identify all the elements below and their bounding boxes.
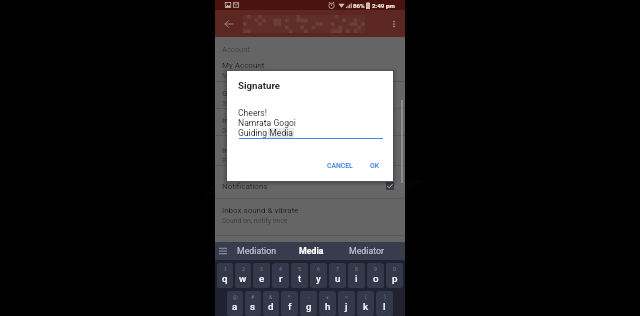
staticText: 8	[355, 266, 358, 272]
staticText: Inbox notifications	[222, 146, 288, 155]
staticText: y	[316, 273, 321, 284]
staticText: &	[269, 294, 273, 300]
button[interactable]: =	[338, 291, 355, 316]
staticText: )	[384, 294, 386, 300]
staticText: 2:49 pm	[372, 2, 395, 9]
button[interactable]: 2	[235, 263, 251, 288]
staticText: r	[279, 273, 283, 284]
button[interactable]: 9	[367, 263, 384, 288]
staticText: 6	[317, 266, 320, 272]
staticText: 1	[224, 266, 227, 272]
button[interactable]: )	[376, 291, 393, 316]
button[interactable]: Media	[282, 242, 340, 260]
button[interactable]: My Account	[215, 61, 405, 80]
staticText: @	[233, 294, 238, 300]
staticText: i	[355, 273, 358, 284]
button[interactable]: Mediator	[341, 242, 393, 260]
staticText: General settings	[222, 89, 280, 98]
button[interactable]: Navigate up	[219, 10, 239, 37]
staticText: Mediator	[349, 246, 385, 256]
staticText: +	[326, 294, 329, 300]
staticText: p	[392, 273, 398, 284]
staticText: CANCEL	[327, 162, 353, 170]
button[interactable]: 7	[329, 263, 346, 288]
staticText: Notifications	[222, 182, 268, 191]
button[interactable]: (	[357, 291, 374, 316]
button[interactable]: CANCEL	[323, 159, 357, 173]
staticText: 4	[279, 266, 282, 272]
staticText: Inbox sound & vibrate	[222, 206, 299, 215]
button[interactable]: Keyboard options	[215, 242, 231, 260]
button[interactable]: +	[319, 291, 336, 316]
staticText: o	[373, 273, 379, 284]
staticText: Inbox categories	[222, 116, 281, 125]
button[interactable]: Mediation	[231, 242, 283, 260]
button[interactable]: 8	[348, 263, 365, 288]
staticText: Manage your account	[222, 72, 288, 80]
staticText: u	[335, 273, 341, 284]
button[interactable]: More options	[386, 10, 402, 37]
staticText: a	[232, 301, 238, 312]
button[interactable]: Inbox notifications	[215, 146, 405, 165]
button[interactable]: General settings	[215, 89, 405, 108]
staticText: =	[345, 294, 348, 300]
staticText: f	[288, 301, 292, 312]
button[interactable]: #	[245, 291, 261, 316]
button[interactable]: &	[263, 291, 279, 316]
button[interactable]: 6	[310, 263, 327, 288]
staticText: s	[250, 301, 256, 312]
button[interactable]: 1	[217, 263, 233, 288]
staticText: 2	[242, 266, 245, 272]
staticText: g	[306, 301, 312, 312]
button[interactable]: Inbox categories	[215, 116, 405, 135]
staticText: (	[365, 294, 367, 300]
staticText: My Account	[222, 61, 265, 70]
staticText: OK	[370, 162, 379, 170]
staticText: Account	[222, 45, 250, 54]
button[interactable]: *	[281, 291, 298, 316]
button[interactable]: 3	[253, 263, 270, 288]
staticText: Storage, sync, language	[222, 100, 294, 108]
staticText: t	[298, 273, 302, 284]
staticText: Default categories shown	[222, 127, 300, 135]
staticText: e	[259, 273, 265, 284]
staticText: Sound on, notify once	[222, 217, 288, 225]
staticText: *	[288, 294, 291, 300]
button[interactable]: OK	[366, 159, 383, 173]
staticText: Mediation	[237, 246, 277, 256]
staticText: 3	[260, 266, 263, 272]
staticText: Signature	[238, 80, 281, 91]
staticText: Media	[299, 246, 324, 256]
staticText: -	[308, 294, 310, 300]
staticText: 86%	[353, 2, 365, 9]
staticText: q	[222, 273, 228, 284]
button[interactable]: 5	[291, 263, 308, 288]
button[interactable]: Notifications	[215, 179, 405, 195]
button[interactable]: @	[227, 291, 243, 316]
staticText: Personalised alerts	[222, 157, 281, 165]
staticText: 5	[298, 266, 301, 272]
button[interactable]: 4	[272, 263, 289, 288]
staticText: k	[363, 301, 369, 312]
button[interactable]: -	[300, 291, 317, 316]
staticText: w	[239, 273, 247, 284]
staticText: 0	[393, 266, 396, 272]
staticText: h	[325, 301, 331, 312]
staticText: 9	[374, 266, 377, 272]
button[interactable]: 0	[386, 263, 403, 288]
staticText: #	[251, 294, 255, 300]
staticText: l	[383, 301, 386, 312]
staticText: d	[268, 301, 274, 312]
staticText: j	[345, 301, 348, 312]
button[interactable]: Inbox sound & vibrate	[215, 206, 405, 225]
staticText: 7	[336, 266, 339, 272]
staticText: Cheers! Namrata Gogoi Guiding Media	[238, 108, 296, 138]
